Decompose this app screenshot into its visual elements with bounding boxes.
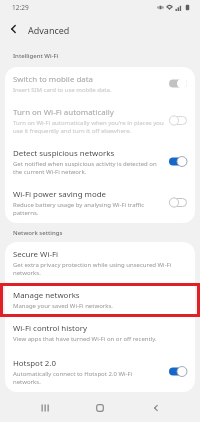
staticText: Intelligent Wi-Fi xyxy=(13,52,59,60)
button[interactable]: Wi-Fi power saving mode xyxy=(5,182,195,223)
button[interactable]: Home xyxy=(89,397,111,419)
staticText: Secure Wi-Fi xyxy=(13,249,59,260)
staticText: Get notified when suspicious activity is… xyxy=(13,160,157,175)
button[interactable]: Turn on Wi-Fi automatically xyxy=(5,100,195,141)
staticText: Insert SIM card to use mobile data. xyxy=(13,86,112,94)
staticText: Advanced xyxy=(28,24,70,36)
staticText: Detect suspicious networks xyxy=(13,148,115,159)
button[interactable]: Toggle switch xyxy=(169,115,187,126)
staticText: Manage your saved Wi-Fi networks. xyxy=(13,302,113,310)
staticText: Turn on Wi-Fi automatically xyxy=(13,107,114,118)
staticText: 12:29 xyxy=(12,3,29,12)
staticText: Wi-Fi control history xyxy=(13,323,87,334)
staticText: View apps that have turned Wi-Fi on or o… xyxy=(13,335,157,343)
button[interactable]: Toggle switch xyxy=(169,78,187,89)
staticText: Automatically connect to Hotspot 2.0 Wi-… xyxy=(13,370,133,385)
button[interactable]: Navigate up xyxy=(6,21,22,37)
staticText: Turn on Wi-Fi automatically when you're … xyxy=(13,119,164,134)
button[interactable]: Hotspot 2.0 xyxy=(5,350,195,392)
button[interactable]: Detect suspicious networks xyxy=(5,141,195,182)
button[interactable]: Toggle switch xyxy=(169,197,187,208)
staticText: Reduce battery usage by analysing Wi-Fi … xyxy=(13,201,145,216)
staticText: Network settings xyxy=(13,229,63,237)
staticText: Switch to mobile data xyxy=(13,74,93,85)
button[interactable]: Toggle switch xyxy=(169,366,187,377)
button[interactable]: Wi-Fi control history xyxy=(5,316,195,350)
button[interactable]: Toggle switch xyxy=(169,156,187,167)
staticText: Wi-Fi power saving mode xyxy=(13,189,107,200)
button[interactable]: Back xyxy=(145,397,167,419)
staticText: Manage networks xyxy=(13,290,80,301)
button[interactable]: Secure Wi-Fi xyxy=(5,242,195,283)
button[interactable]: Manage networks xyxy=(5,283,195,316)
staticText: Get extra privacy protection while using… xyxy=(13,261,172,276)
button[interactable]: Recents xyxy=(34,397,56,419)
button[interactable]: Switch to mobile data xyxy=(5,67,195,100)
staticText: Hotspot 2.0 xyxy=(13,358,56,369)
